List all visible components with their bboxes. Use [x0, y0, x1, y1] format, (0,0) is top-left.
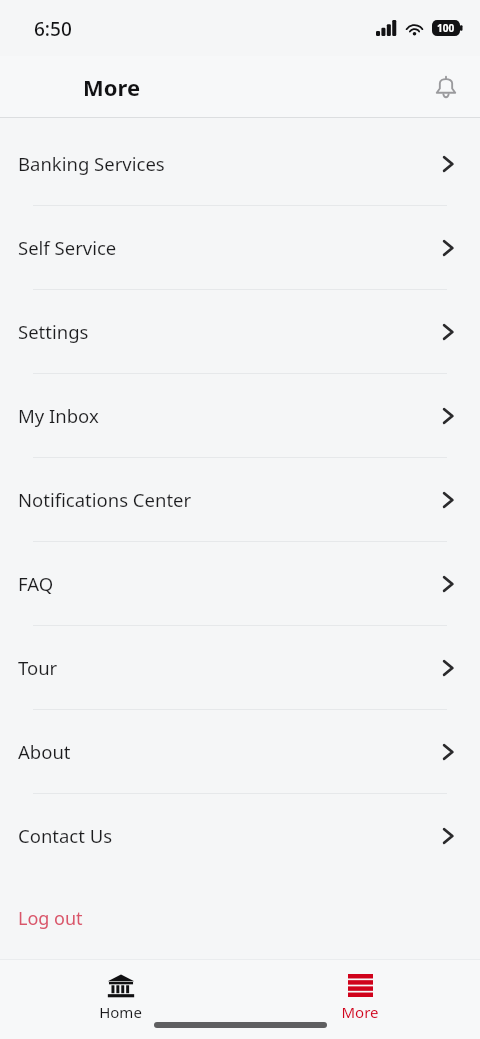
- staticText: Home: [99, 1002, 142, 1022]
- button[interactable]: My Inbox: [0, 374, 480, 457]
- staticText: Tour: [18, 655, 58, 680]
- staticText: My Inbox: [18, 403, 99, 428]
- button[interactable]: Log out: [0, 877, 480, 959]
- button[interactable]: More: [240, 960, 480, 1032]
- button[interactable]: FAQ: [0, 542, 480, 625]
- staticText: Log out: [18, 906, 83, 931]
- staticText: About: [18, 739, 71, 764]
- button[interactable]: Contact Us: [0, 794, 480, 877]
- staticText: 6:50: [34, 16, 72, 42]
- staticText: Notifications Center: [18, 487, 192, 512]
- button[interactable]: Tour: [0, 626, 480, 709]
- button[interactable]: Self Service: [0, 206, 480, 289]
- staticText: Banking Services: [18, 151, 165, 176]
- staticText: Settings: [18, 319, 89, 344]
- button[interactable]: Settings: [0, 290, 480, 373]
- staticText: More: [341, 1002, 379, 1022]
- button[interactable]: Notifications Center: [0, 458, 480, 541]
- button[interactable]: About: [0, 710, 480, 793]
- button[interactable]: Home: [0, 960, 240, 1032]
- staticText: Self Service: [18, 235, 117, 260]
- staticText: FAQ: [18, 571, 54, 596]
- staticText: 100: [437, 21, 455, 35]
- button[interactable]: Banking Services: [0, 122, 480, 205]
- button[interactable]: Notifications: [424, 65, 468, 109]
- staticText: Contact Us: [18, 823, 113, 848]
- staticText: More: [83, 72, 141, 102]
